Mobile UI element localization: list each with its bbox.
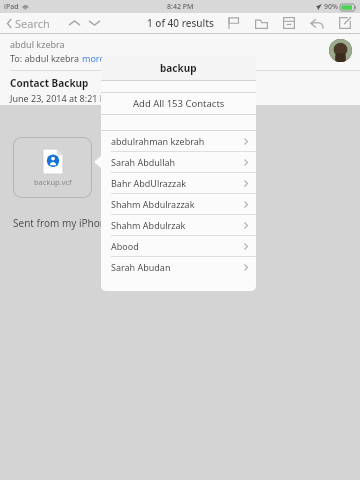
- button[interactable]: Previous message: [64, 13, 84, 33]
- button[interactable]: Reply: [308, 14, 326, 32]
- button[interactable]: Flag: [224, 14, 242, 32]
- button[interactable]: Abood: [101, 236, 256, 256]
- staticText: June 23, 2014 at 8:21 PM: [10, 92, 114, 104]
- staticText: To: abdul kzebra: [10, 52, 82, 64]
- staticText: Shahm Abdulrzak: [111, 219, 244, 231]
- staticText: Sarah Abudan: [111, 261, 244, 273]
- button[interactable]: Sender photo: [329, 39, 352, 62]
- staticText: abdul kzebra: [10, 38, 65, 50]
- button[interactable]: Sarah Abdullah: [101, 152, 256, 172]
- staticText: backup: [160, 61, 197, 75]
- staticText: Sent from my iPhone: [13, 216, 112, 230]
- staticText: abdulrahman kzebrah: [111, 135, 244, 147]
- button[interactable]: Archive: [280, 14, 298, 32]
- button[interactable]: Add All 153 Contacts: [101, 93, 256, 114]
- button[interactable]: more...: [82, 52, 112, 64]
- staticText: backup.vcf: [34, 177, 72, 187]
- button[interactable]: Search: [5, 14, 52, 33]
- button[interactable]: abdulrahman kzebrah: [101, 131, 256, 151]
- button[interactable]: Compose: [336, 14, 354, 32]
- button[interactable]: Shahm Abdulrzak: [101, 215, 256, 235]
- staticText: Bahr AbdUlrazzak: [111, 177, 244, 189]
- button[interactable]: Shahm Abdulrazzak: [101, 194, 256, 214]
- staticText: 1 of 40 results: [147, 16, 214, 30]
- staticText: Shahm Abdulrazzak: [111, 198, 244, 210]
- staticText: 90%: [324, 2, 338, 12]
- staticText: Contact Backup: [10, 76, 89, 90]
- staticText: Abood: [111, 240, 244, 252]
- button[interactable]: Bahr AbdUlrazzak: [101, 173, 256, 193]
- staticText: more...: [82, 52, 112, 64]
- staticText: Add All 153 Contacts: [133, 97, 225, 110]
- staticText: Sarah Abdullah: [111, 156, 244, 168]
- button[interactable]: backup.vcf attachment: [13, 137, 92, 198]
- button[interactable]: Sarah Abudan: [101, 257, 256, 277]
- staticText: Search: [15, 16, 50, 31]
- staticText: 8:42 PM: [167, 2, 194, 12]
- staticText: iPad: [4, 2, 19, 12]
- button[interactable]: Next message: [84, 13, 104, 33]
- button[interactable]: Move to folder: [252, 14, 270, 32]
